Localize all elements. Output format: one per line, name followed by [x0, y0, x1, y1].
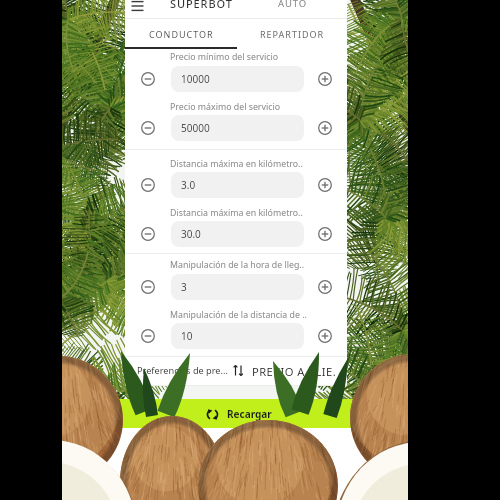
button[interactable]: PRECIO A CLIE. [252, 364, 337, 379]
staticText: 50000 [181, 121, 210, 135]
staticText: PRECIO A CLIE. [252, 364, 337, 379]
staticText: 3.0 [181, 178, 196, 192]
button[interactable]: Preferencias de pre... [137, 364, 228, 377]
button[interactable]: 30.0 [171, 221, 304, 247]
staticText: Recargar [227, 407, 272, 421]
staticText: 10 [181, 329, 193, 343]
button[interactable]: Decrease Precio mínimo del servicio [136, 67, 160, 91]
button[interactable]: Sort order [230, 362, 246, 378]
button[interactable]: REPARTIDOR [236, 19, 348, 48]
button[interactable]: Increase Manipulación de la hora de lleg… [313, 275, 337, 299]
button[interactable]: Increase Precio máximo del servicio [313, 116, 337, 140]
button[interactable]: Increase Distancia máxima en kilómetro.. [313, 222, 337, 246]
staticText: Distancia máxima en kilómetro.. [170, 207, 303, 219]
button[interactable]: 3 [171, 274, 304, 300]
button[interactable]: Increase Precio mínimo del servicio [313, 67, 337, 91]
button[interactable]: Menu [125, 0, 149, 18]
staticText: Precio máximo del servicio [170, 101, 281, 113]
button[interactable]: Decrease Manipulación de la distancia de… [136, 324, 160, 348]
button[interactable]: Increase Distancia máxima en kilómetro.. [313, 173, 337, 197]
staticText: 10000 [181, 72, 210, 86]
staticText: Precio mínimo del servicio [170, 51, 279, 63]
button[interactable]: Recargar [62, 399, 408, 449]
button[interactable]: 10000 [171, 66, 304, 92]
button[interactable]: Decrease Manipulación de la hora de lleg… [136, 275, 160, 299]
staticText: Preferencias de pre... [137, 364, 228, 377]
staticText: Manipulación de la hora de lleg.. [170, 259, 305, 271]
staticText: 30.0 [181, 227, 201, 241]
button[interactable]: CONDUCTOR [125, 19, 237, 48]
staticText: 3 [181, 280, 187, 294]
staticText: AUTO [278, 0, 308, 10]
staticText: CONDUCTOR [149, 28, 214, 40]
staticText: SUPERBOT [170, 0, 233, 11]
button[interactable]: 10 [171, 323, 304, 349]
button[interactable]: Decrease Precio máximo del servicio [136, 116, 160, 140]
staticText: Manipulación de la distancia de .. [170, 309, 307, 321]
button[interactable]: Decrease Distancia máxima en kilómetro.. [136, 173, 160, 197]
staticText: Distancia máxima en kilómetro.. [170, 158, 303, 170]
button[interactable]: Increase Manipulación de la distancia de… [313, 324, 337, 348]
button[interactable]: Decrease Distancia máxima en kilómetro.. [136, 222, 160, 246]
button[interactable]: 50000 [171, 115, 304, 141]
staticText: REPARTIDOR [260, 28, 325, 40]
button[interactable]: 3.0 [171, 172, 304, 198]
